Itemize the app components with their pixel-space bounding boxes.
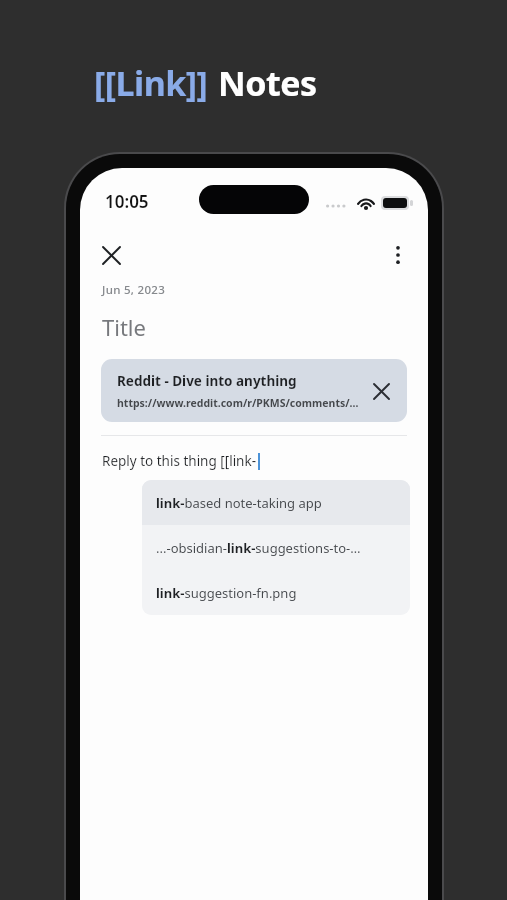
staticText: Reddit - Dive into anything xyxy=(117,372,297,390)
staticText: link-suggestion-fn.png xyxy=(156,584,297,602)
button[interactable]: link-suggestion-fn.png xyxy=(142,570,410,615)
button[interactable]: Reddit - Dive into anything xyxy=(101,359,407,422)
staticText: link-based note-taking app xyxy=(156,494,322,512)
staticText: ...-obsidian-link-suggestions-to-… xyxy=(156,539,361,557)
staticText: Jun 5, 2023 xyxy=(102,282,166,298)
staticText: Title xyxy=(102,312,146,342)
button[interactable]: Remove link xyxy=(361,371,401,411)
button[interactable]: More options xyxy=(375,232,421,278)
button[interactable]: Close xyxy=(88,232,134,278)
staticText: 10:05 xyxy=(105,190,149,213)
staticText: Reply to this thing [[link- xyxy=(102,452,257,470)
button[interactable]: link-based note-taking app xyxy=(142,480,410,525)
staticText: [[Link]] xyxy=(94,60,208,106)
button[interactable]: ...-obsidian-link-suggestions-to-… xyxy=(142,525,410,570)
staticText: https://www.reddit.com/r/PKMS/comments/… xyxy=(117,396,359,410)
staticText: Notes xyxy=(218,60,317,106)
